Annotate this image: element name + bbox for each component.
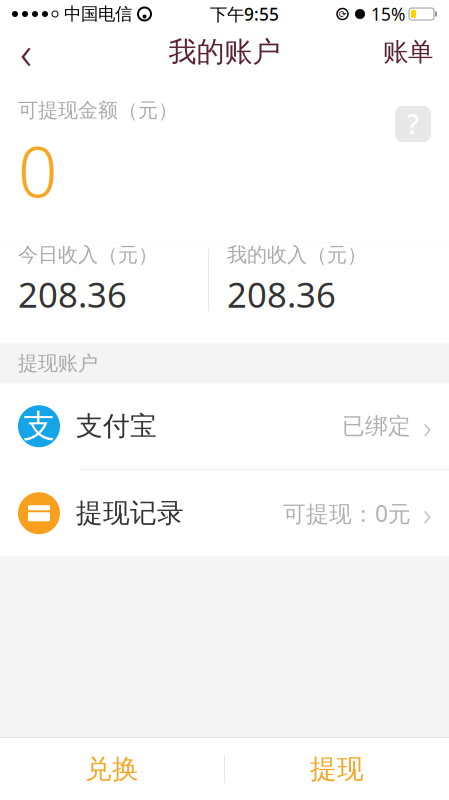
button[interactable]: 提现 <box>225 738 449 799</box>
staticText: 下午9:55 <box>210 2 279 25</box>
staticText: 0 <box>18 125 58 217</box>
staticText: ? <box>407 106 419 142</box>
staticText: ⟳ <box>338 9 346 19</box>
staticText: 我的账户 <box>168 35 280 69</box>
staticText: 已绑定 <box>342 412 411 440</box>
staticText: 15% <box>371 2 405 25</box>
button[interactable]: 返回 <box>0 30 52 74</box>
staticText: 提现 <box>310 753 364 785</box>
staticText: 208.36 <box>18 271 127 317</box>
staticText: 我的收入（元） <box>227 243 367 267</box>
staticText: 提现账户 <box>18 351 98 376</box>
staticText: 今日收入（元） <box>18 243 158 267</box>
staticText: › <box>423 492 431 534</box>
staticText: 兑换 <box>85 753 139 785</box>
staticText: 账单 <box>383 36 433 67</box>
button[interactable]: 支 <box>0 383 449 469</box>
button[interactable]: 账单 <box>367 30 449 74</box>
staticText: 支付宝 <box>76 410 157 443</box>
staticText: 可提现金额（元） <box>18 98 178 123</box>
staticText: 208.36 <box>227 271 336 317</box>
staticText: 可提现：0元 <box>283 498 411 528</box>
staticText: 支 <box>23 407 55 446</box>
staticText: 中国电信 <box>64 3 132 25</box>
staticText: 提现记录 <box>76 497 184 530</box>
button[interactable]: 说明 <box>395 106 431 142</box>
button[interactable]: 提现记录 <box>0 470 449 556</box>
button[interactable]: 兑换 <box>0 738 224 799</box>
staticText: ‹ <box>20 22 32 82</box>
staticText: › <box>423 405 431 447</box>
